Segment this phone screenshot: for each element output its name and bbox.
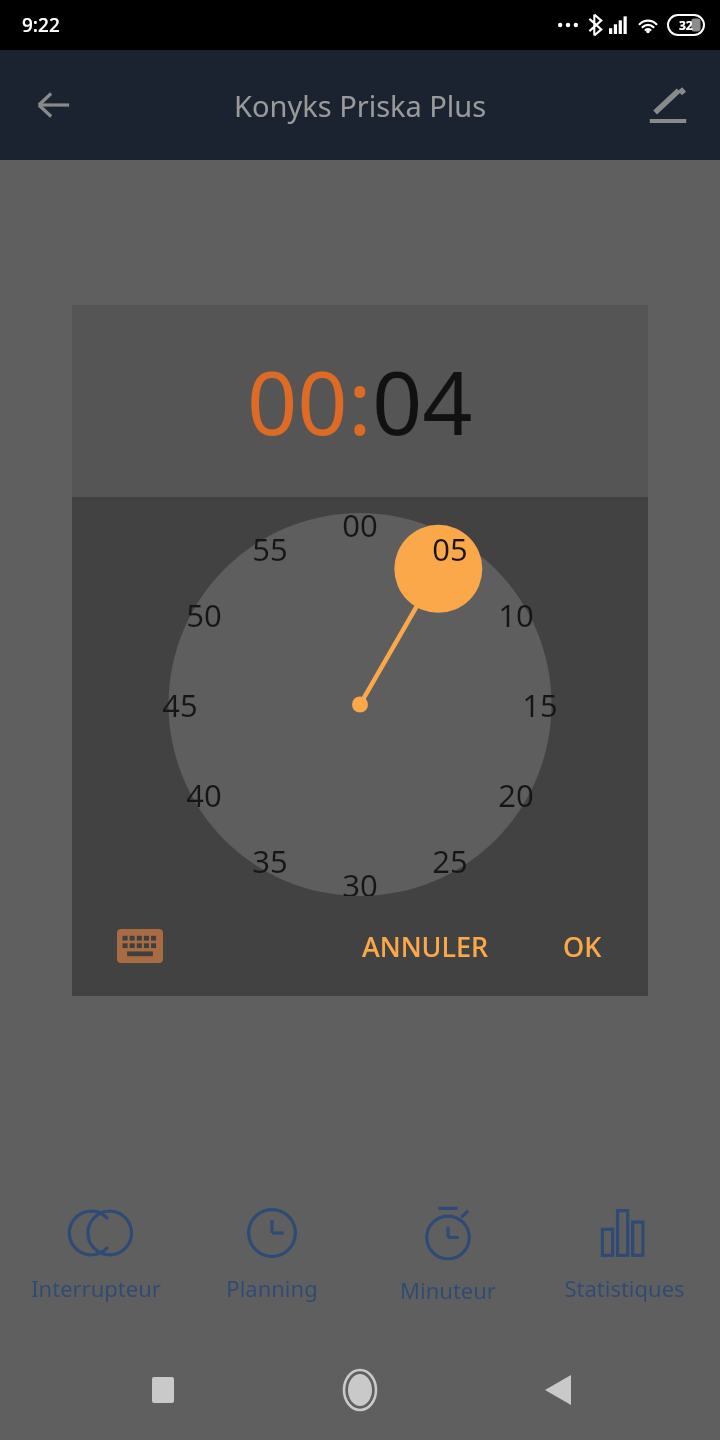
button[interactable]: 00: [247, 341, 348, 461]
button[interactable]: 04: [372, 341, 473, 461]
staticText: :: [348, 341, 372, 461]
staticText: 9:22: [22, 12, 60, 38]
staticText: 15: [522, 684, 558, 726]
button[interactable]: Interrupteur: [16, 1201, 176, 1309]
staticText: 10: [498, 594, 534, 636]
button[interactable]: Switch to keyboard input: [112, 918, 168, 974]
staticText: 25: [432, 840, 468, 882]
staticText: OK: [563, 928, 602, 965]
button[interactable]: Recent apps: [128, 1355, 198, 1425]
staticText: ANNULER: [362, 928, 489, 965]
staticText: 40: [186, 774, 222, 816]
button[interactable]: Planning: [192, 1201, 352, 1309]
button[interactable]: Back: [22, 73, 86, 137]
button[interactable]: OK: [547, 918, 618, 975]
staticText: 45: [162, 684, 198, 726]
staticText: Interrupteur: [31, 1273, 161, 1303]
button[interactable]: Statistiques: [544, 1201, 704, 1309]
staticText: 35: [252, 840, 288, 882]
staticText: 20: [498, 774, 534, 816]
staticText: Planning: [226, 1273, 318, 1303]
button[interactable]: ANNULER: [346, 918, 505, 975]
staticText: 50: [186, 594, 222, 636]
staticText: 30: [342, 864, 378, 906]
staticText: 55: [252, 528, 288, 570]
staticText: Statistiques: [564, 1273, 685, 1303]
staticText: 32: [679, 17, 693, 33]
staticText: 00: [342, 504, 378, 546]
button[interactable]: Home: [325, 1355, 395, 1425]
button[interactable]: Minuteur: [368, 1199, 528, 1311]
staticText: Konyks Priska Plus: [234, 86, 487, 125]
staticText: 05: [432, 528, 468, 570]
staticText: Minuteur: [400, 1275, 496, 1305]
button[interactable]: Edit: [636, 73, 700, 137]
button[interactable]: Back: [523, 1355, 593, 1425]
